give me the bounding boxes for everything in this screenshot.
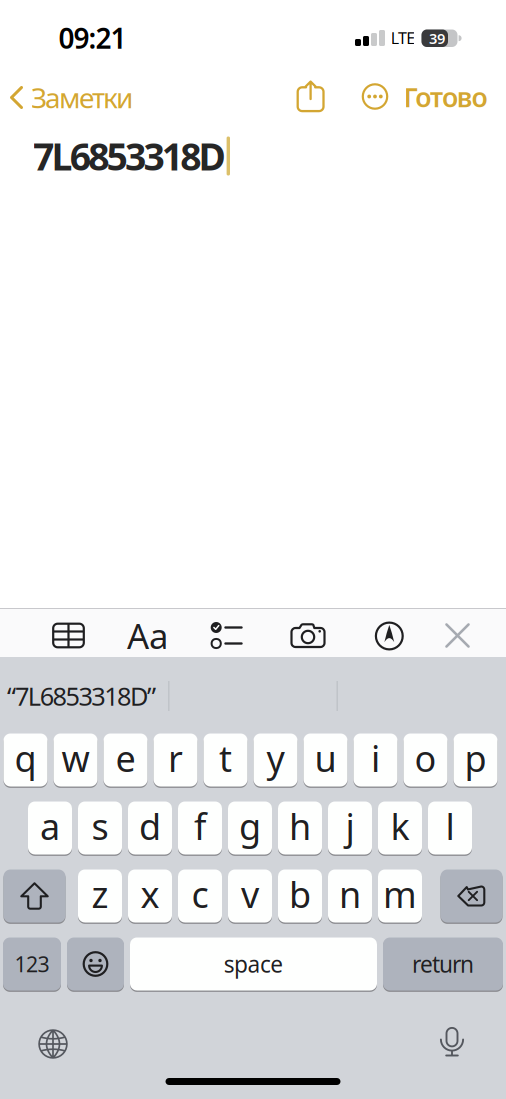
staticText: return — [412, 949, 474, 979]
button[interactable]: Emoji — [67, 936, 124, 991]
staticText: b — [289, 870, 311, 918]
button[interactable]: Checklist — [210, 622, 242, 649]
button[interactable]: Готово — [391, 82, 487, 112]
button[interactable]: k — [378, 800, 422, 855]
staticText: Готово — [403, 79, 487, 115]
staticText: g — [239, 802, 261, 850]
button[interactable]: space — [130, 936, 377, 991]
button[interactable]: g — [228, 800, 272, 855]
button[interactable]: “7L6853318D” — [7, 674, 185, 718]
button[interactable]: e — [103, 732, 147, 787]
button[interactable]: Camera — [291, 623, 325, 648]
staticText: k — [390, 802, 409, 850]
staticText: j — [345, 802, 354, 850]
staticText: c — [191, 870, 208, 918]
staticText: h — [289, 802, 311, 850]
staticText: LTE — [391, 27, 415, 49]
button[interactable]: v — [228, 868, 272, 923]
button[interactable]: z — [78, 868, 122, 923]
button[interactable]: l — [428, 800, 472, 855]
staticText: w — [61, 734, 89, 782]
button[interactable]: Share — [296, 80, 324, 112]
button[interactable]: c — [178, 868, 222, 923]
button[interactable]: q — [3, 732, 47, 787]
staticText: f — [194, 802, 206, 850]
staticText: v — [241, 870, 259, 918]
button[interactable]: p — [453, 732, 497, 787]
button[interactable]: 123 — [3, 936, 61, 991]
staticText: o — [414, 734, 436, 782]
staticText: p — [464, 734, 486, 782]
button[interactable]: j — [328, 800, 372, 855]
staticText: 7L6853318D — [33, 131, 226, 181]
button[interactable]: Delete — [440, 868, 502, 923]
staticText: z — [91, 870, 108, 918]
staticText: Aa — [127, 612, 168, 658]
staticText: s — [91, 802, 108, 850]
staticText: r — [168, 734, 183, 782]
button[interactable]: u — [303, 732, 347, 787]
button[interactable]: y — [253, 732, 297, 787]
button[interactable]: Shift — [3, 868, 65, 923]
button[interactable]: r — [153, 732, 197, 787]
button[interactable]: return — [383, 936, 503, 991]
button[interactable]: b — [278, 868, 322, 923]
button[interactable]: w — [53, 732, 97, 787]
button[interactable]: Insert table — [52, 622, 85, 648]
staticText: a — [40, 802, 60, 850]
button[interactable]: s — [78, 800, 122, 855]
button[interactable]: Dictation — [430, 1020, 474, 1064]
staticText: e — [115, 734, 135, 782]
staticText: t — [219, 734, 232, 782]
button[interactable]: t — [203, 732, 247, 787]
staticText: 39 — [429, 29, 445, 48]
staticText: i — [371, 734, 380, 782]
button[interactable]: h — [278, 800, 322, 855]
button[interactable]: Заметки — [4, 84, 169, 111]
button[interactable]: o — [403, 732, 447, 787]
button[interactable]: m — [378, 868, 422, 923]
button[interactable]: x — [128, 868, 172, 923]
button[interactable]: d — [128, 800, 172, 855]
button[interactable]: Dismiss keyboard — [444, 622, 470, 648]
button[interactable]: More — [362, 83, 388, 109]
staticText: m — [383, 870, 417, 918]
button[interactable]: f — [178, 800, 222, 855]
button[interactable]: Format — [125, 618, 169, 652]
staticText: q — [14, 734, 36, 782]
button[interactable]: Next keyboard — [31, 1022, 75, 1066]
staticText: 09:21 — [58, 19, 126, 57]
staticText: u — [314, 734, 336, 782]
staticText: n — [339, 870, 361, 918]
staticText: l — [445, 802, 454, 850]
staticText: d — [139, 802, 161, 850]
staticText: y — [266, 734, 284, 782]
staticText: space — [224, 949, 283, 979]
button[interactable]: a — [28, 800, 72, 855]
button[interactable]: n — [328, 868, 372, 923]
staticText: Заметки — [31, 79, 133, 116]
staticText: “7L6853318D” — [7, 679, 156, 713]
staticText: x — [140, 870, 159, 918]
button[interactable]: Markup — [375, 621, 404, 650]
button[interactable]: i — [353, 732, 397, 787]
staticText: 123 — [14, 950, 50, 978]
